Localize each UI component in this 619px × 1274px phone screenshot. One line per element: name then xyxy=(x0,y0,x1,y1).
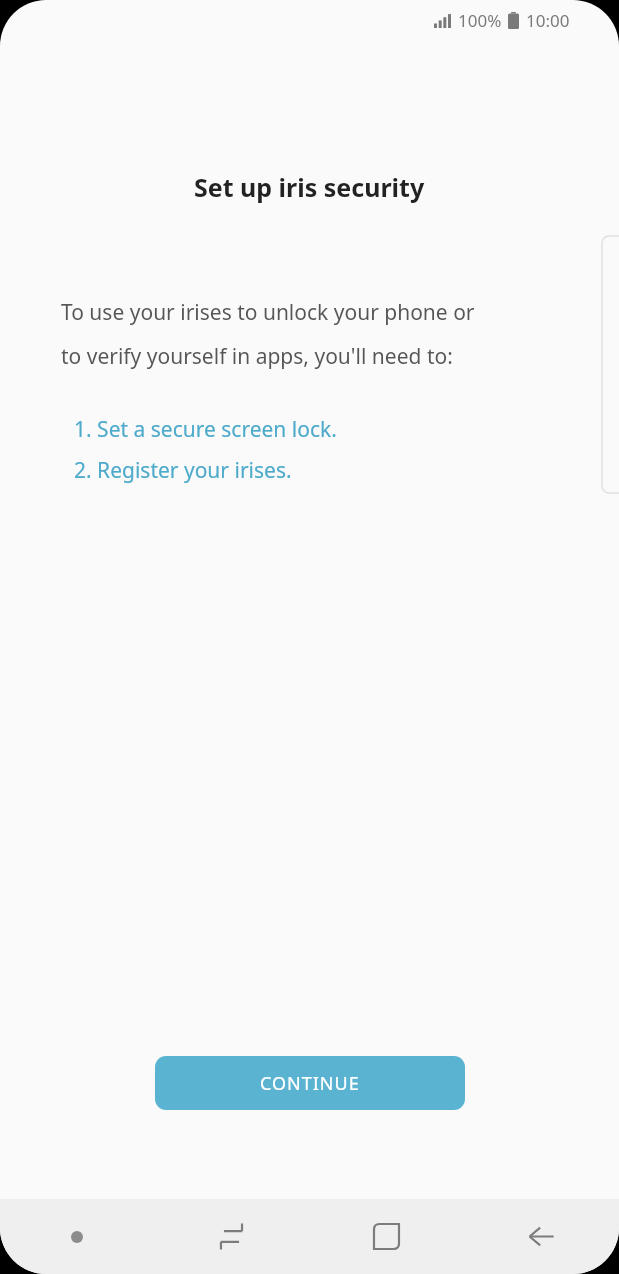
staticText: 100% xyxy=(458,9,502,32)
staticText: Set up iris security xyxy=(194,170,425,204)
staticText: CONTINUE xyxy=(260,1071,360,1096)
staticText: to verify yourself in apps, you'll need … xyxy=(61,342,453,371)
staticText: 2. Register your irises. xyxy=(74,456,292,485)
button[interactable]: Recent apps xyxy=(154,1199,309,1274)
button[interactable]: CONTINUE xyxy=(155,1056,465,1110)
button[interactable]: Home xyxy=(309,1199,464,1274)
button[interactable]: Back xyxy=(464,1199,619,1274)
staticText: To use your irises to unlock your phone … xyxy=(61,298,475,327)
staticText: 10:00 xyxy=(526,9,570,32)
staticText: 1. Set a secure screen lock. xyxy=(74,415,337,444)
